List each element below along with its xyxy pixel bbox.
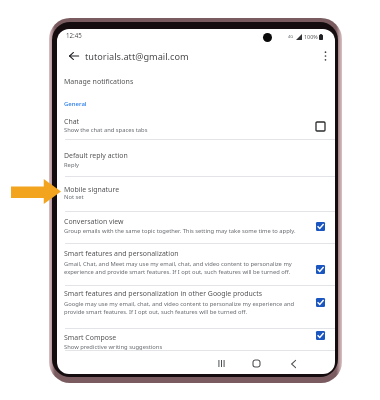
button[interactable]: Back [279, 353, 308, 374]
staticText: Show predictive writing suggestions [64, 343, 304, 351]
staticText: Not set [64, 193, 304, 201]
staticText: Smart Compose [64, 333, 117, 342]
staticText: Smart features and personalization [64, 249, 179, 258]
staticText: tutorials.att@gmail.com [85, 50, 189, 63]
staticText: Chat [64, 117, 80, 126]
button[interactable] [57, 286, 335, 328]
staticText: Default reply action [64, 151, 128, 160]
button[interactable] [57, 328, 335, 351]
staticText: Manage notifications [64, 77, 134, 87]
staticText: Show the chat and spaces tabs [64, 126, 304, 134]
staticText: 4G [288, 34, 294, 39]
button[interactable]: Home [242, 353, 271, 374]
button[interactable]: Recent apps [207, 353, 236, 374]
staticText: Mobile signature [64, 185, 120, 194]
staticText: General [64, 100, 87, 108]
button[interactable] [57, 177, 335, 212]
button[interactable]: More options [315, 46, 335, 66]
button[interactable]: Smart features and personalization in ot… [311, 293, 329, 311]
staticText: Gmail, Chat, and Meet may use my email, … [64, 260, 304, 276]
staticText: Smart features and personalization in ot… [64, 289, 262, 298]
staticText: Group emails with the same topic togethe… [64, 227, 304, 235]
button[interactable] [57, 115, 335, 140]
staticText: 100% [304, 33, 318, 40]
staticText: 12:45 [66, 31, 82, 39]
staticText: Reply [64, 161, 304, 169]
staticText: Google may use my email, chat, and video… [64, 300, 304, 316]
staticText: Conversation view [64, 217, 124, 226]
button[interactable]: Chat [311, 117, 329, 135]
button[interactable]: Navigate up [64, 46, 84, 66]
button[interactable]: Smart Compose [311, 326, 329, 344]
button[interactable] [57, 243, 335, 286]
button[interactable] [57, 212, 335, 243]
button[interactable] [57, 140, 335, 177]
button[interactable]: Conversation view [311, 217, 329, 235]
button[interactable]: Smart features and personalization [311, 260, 329, 278]
